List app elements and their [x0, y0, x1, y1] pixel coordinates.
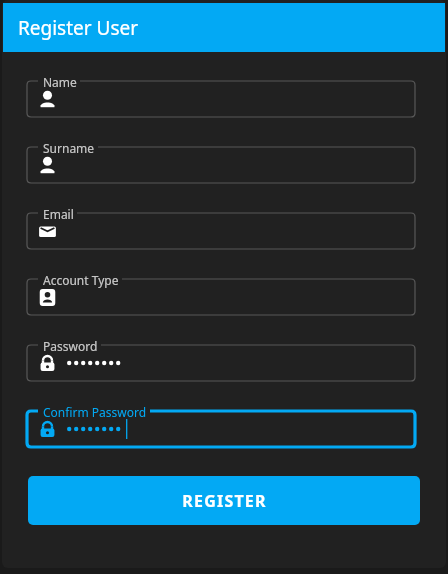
- staticText: REGISTER: [182, 490, 267, 512]
- staticText: Confirm Password: [43, 404, 147, 420]
- button[interactable]: Name: [27, 81, 415, 117]
- other: Person: [37, 89, 58, 110]
- button[interactable]: Password: [27, 345, 415, 381]
- staticText: Email: [43, 206, 74, 222]
- button[interactable]: Register User: [3, 3, 445, 52]
- other: Email: [37, 221, 58, 242]
- button[interactable]: Confirm Password: [27, 411, 415, 447]
- other: Person: [37, 155, 58, 176]
- other: Password: [37, 353, 58, 374]
- button[interactable]: Email: [27, 213, 415, 249]
- staticText: Account Type: [43, 272, 119, 288]
- staticText: Password: [43, 338, 98, 354]
- staticText: Register User: [18, 15, 139, 41]
- other: Account type: [37, 287, 58, 308]
- button[interactable]: Account Type: [27, 279, 415, 315]
- other: Password: [37, 419, 58, 440]
- staticText: Name: [43, 74, 77, 90]
- staticText: Surname: [43, 140, 95, 156]
- button[interactable]: REGISTER: [28, 476, 420, 525]
- button[interactable]: Surname: [27, 147, 415, 183]
